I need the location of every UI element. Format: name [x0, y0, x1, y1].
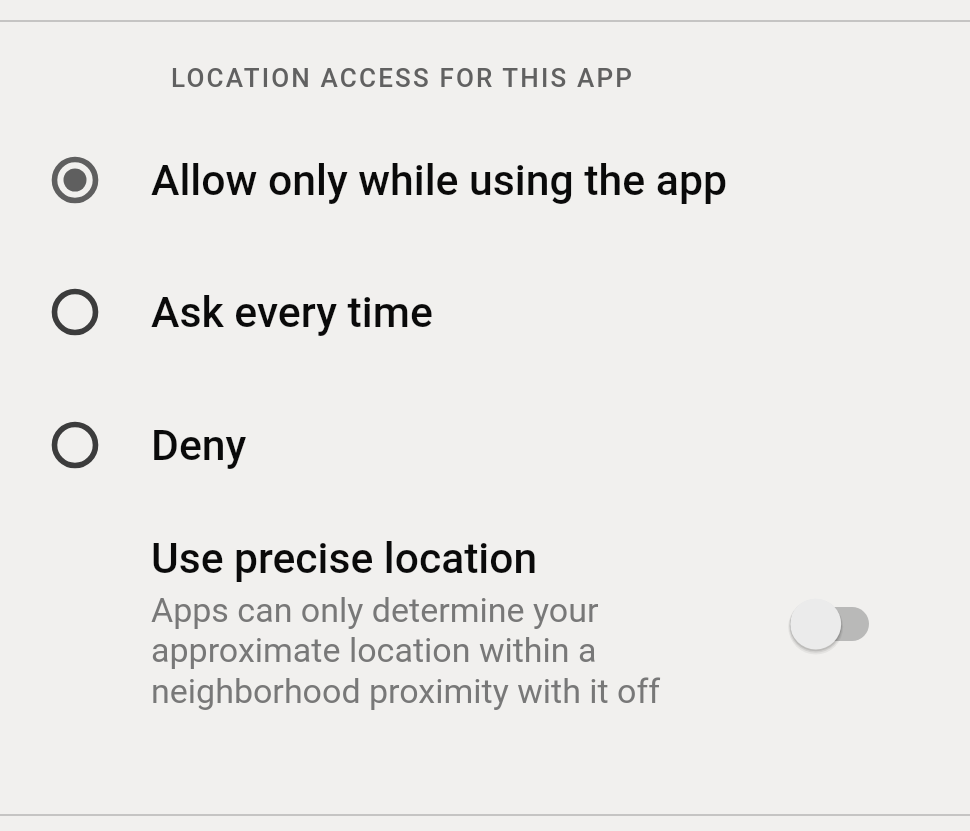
staticText: Allow only while using the app: [151, 155, 727, 205]
button[interactable]: Allow only while using the app: [0, 134, 970, 226]
staticText: Ask every time: [151, 287, 433, 337]
button[interactable]: Ask every time: [0, 266, 970, 358]
staticText: Deny: [151, 420, 247, 470]
button[interactable]: Deny: [0, 399, 970, 491]
button[interactable]: Use precise location: [0, 508, 970, 738]
button[interactable]: Use precise location, off: [770, 584, 890, 664]
staticText: Apps can only determine your approximate…: [151, 590, 661, 712]
staticText: LOCATION ACCESS FOR THIS APP: [171, 63, 635, 93]
staticText: Use precise location: [151, 534, 538, 584]
